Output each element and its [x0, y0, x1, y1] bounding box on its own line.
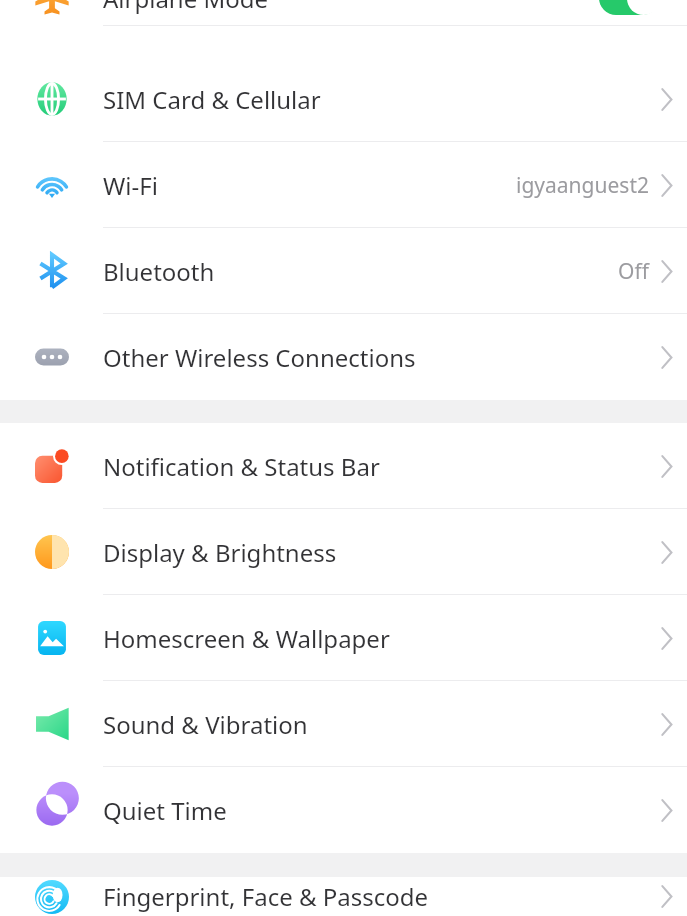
staticText: Bluetooth [103, 255, 215, 288]
staticText: igyaanguest2 [516, 171, 649, 200]
button[interactable]: Fingerprint, Face & Passcode [0, 877, 687, 916]
button[interactable]: Notification & Status Bar [0, 423, 687, 509]
staticText: Display & Brightness [103, 536, 337, 569]
button[interactable]: Display & Brightness [0, 509, 687, 595]
staticText: Other Wireless Connections [103, 341, 416, 374]
button[interactable]: Other Wireless Connections [0, 314, 687, 400]
staticText: Notification & Status Bar [103, 450, 380, 483]
button[interactable]: Airplane Mode toggle [599, 0, 661, 16]
button[interactable]: SIM Card & Cellular [0, 56, 687, 142]
button[interactable]: Quiet Time [0, 767, 687, 853]
button[interactable]: Sound & Vibration [0, 681, 687, 767]
staticText: Wi-Fi [103, 169, 158, 202]
button[interactable]: Bluetooth [0, 228, 687, 314]
staticText: Homescreen & Wallpaper [103, 622, 390, 655]
staticText: Quiet Time [103, 794, 227, 827]
button[interactable]: Airplane Mode [0, 0, 687, 26]
staticText: Fingerprint, Face & Passcode [103, 880, 429, 913]
button[interactable]: Homescreen & Wallpaper [0, 595, 687, 681]
button[interactable]: Wi-Fi [0, 142, 687, 228]
staticText: SIM Card & Cellular [103, 83, 321, 116]
staticText: Off [618, 257, 649, 286]
staticText: Airplane Mode [103, 0, 269, 15]
staticText: Sound & Vibration [103, 708, 308, 741]
